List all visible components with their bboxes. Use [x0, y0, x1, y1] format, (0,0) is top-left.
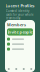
button[interactable]: Tab — [12, 68, 20, 70]
button[interactable]: Tab — [5, 68, 12, 70]
button[interactable]: Invite people — [7, 28, 33, 36]
staticText: Lucent Profiles — [5, 3, 34, 8]
button[interactable]: Tab — [20, 68, 27, 70]
staticText: Invite people — [7, 29, 32, 35]
staticText: Members — [7, 22, 26, 27]
button[interactable]: Tab — [27, 68, 35, 70]
staticText: Curated identity cards for your whole te… — [6, 9, 34, 20]
